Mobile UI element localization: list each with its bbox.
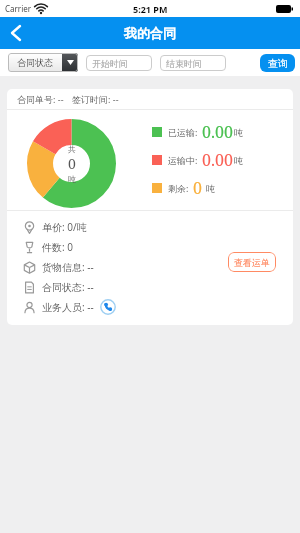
staticText: 运输中: — [168, 154, 198, 166]
button[interactable]: 件数: 0 — [23, 237, 293, 257]
button[interactable]: 开始时间 — [86, 55, 152, 71]
staticText: Carrier — [5, 3, 32, 14]
staticText: 开始时间 — [92, 58, 128, 69]
staticText: 货物信息: -- — [42, 260, 94, 274]
staticText: 件数: 0 — [42, 240, 73, 254]
staticText: 吨 — [234, 155, 243, 166]
staticText: 合同状态 — [17, 57, 53, 68]
staticText: 0 — [68, 154, 76, 173]
staticText: 业务人员: -- — [42, 300, 94, 314]
staticText: 已运输: — [168, 126, 198, 138]
staticText: 查询 — [268, 57, 288, 70]
staticText: 合同单号: -- — [17, 93, 64, 105]
staticText: 签订时间: -- — [72, 93, 119, 105]
button[interactable]: 合同状态 — [8, 53, 78, 72]
staticText: 0 — [193, 177, 202, 199]
staticText: 0.00 — [202, 149, 233, 171]
button[interactable]: 查看运单 — [228, 252, 276, 272]
button[interactable]: 查询 — [260, 54, 295, 72]
button[interactable]: 结束时间 — [160, 55, 226, 71]
staticText: 单价: 0/吨 — [42, 220, 87, 234]
staticText: 剩余: — [168, 182, 189, 194]
staticText: 共 — [68, 144, 76, 154]
staticText: 吨 — [206, 183, 215, 194]
staticText: 吨 — [234, 127, 243, 138]
button[interactable]: 业务人员: -- — [23, 297, 293, 317]
staticText: 结束时间 — [166, 58, 202, 69]
staticText: 查看运单 — [234, 257, 270, 268]
button[interactable]: 单价: 0/吨 — [23, 217, 293, 237]
staticText: 合同状态: -- — [42, 280, 94, 294]
button[interactable] — [0, 17, 32, 49]
button[interactable]: 货物信息: -- — [23, 257, 293, 277]
staticText: 吨 — [68, 174, 76, 184]
staticText: 我的合同 — [124, 25, 176, 41]
button[interactable]: 合同状态: -- — [23, 277, 293, 297]
staticText: 5:21 PM — [133, 3, 168, 15]
staticText: 0.00 — [202, 121, 233, 143]
